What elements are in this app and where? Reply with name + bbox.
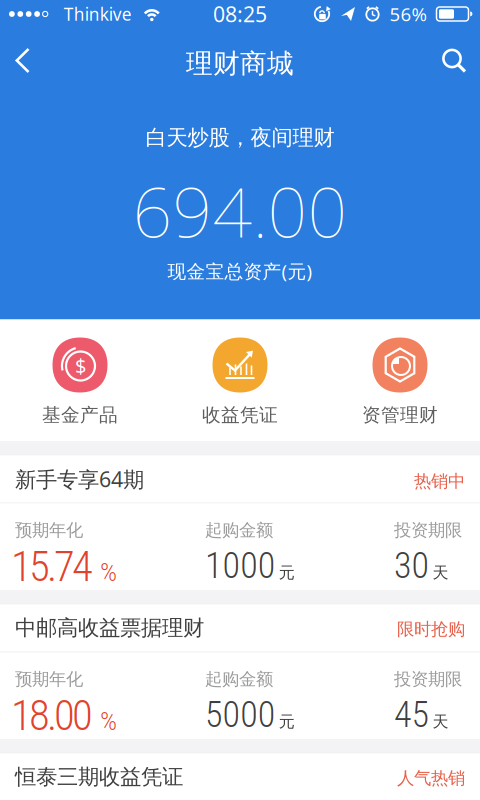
staticText: 15.74	[11, 541, 93, 591]
staticText: 1000	[205, 544, 276, 587]
staticText: 预期年化	[15, 668, 83, 690]
button[interactable]: Back	[0, 29, 31, 91]
staticText: 现金宝总资产(元)	[167, 258, 312, 283]
button[interactable]: Search	[441, 29, 480, 91]
staticText: 56%	[389, 2, 427, 26]
staticText: 5000	[205, 693, 276, 736]
staticText: 45	[394, 693, 430, 736]
staticText: 08:25	[213, 0, 267, 28]
button[interactable]: $	[0, 337, 160, 426]
staticText: 起购金额	[205, 519, 273, 541]
button[interactable]: 恒泰三期收益凭证	[0, 753, 480, 800]
staticText: 理财商城	[186, 47, 294, 80]
staticText: 基金产品	[42, 403, 118, 426]
button[interactable]: 收益凭证	[160, 337, 320, 426]
staticText: 天	[433, 563, 449, 582]
button[interactable]: 新手专享64期	[0, 455, 480, 590]
staticText: 中邮高收益票据理财	[15, 615, 204, 641]
staticText: 30	[394, 544, 430, 587]
button[interactable]: 中邮高收益票据理财	[0, 604, 480, 739]
staticText: 收益凭证	[202, 403, 278, 426]
staticText: 元	[279, 563, 295, 582]
staticText: 694.00	[132, 163, 347, 258]
button[interactable]: 资管理财	[320, 337, 480, 426]
staticText: 预期年化	[15, 519, 83, 541]
staticText: 热销中	[414, 471, 465, 492]
staticText: 资管理财	[362, 403, 438, 426]
staticText: 18.00	[11, 690, 93, 740]
staticText: %	[100, 705, 117, 737]
staticText: 起购金额	[205, 668, 273, 690]
staticText: 投资期限	[394, 519, 462, 541]
staticText: 恒泰三期收益凭证	[15, 764, 183, 790]
staticText: 天	[433, 712, 449, 731]
staticText: $	[75, 352, 86, 379]
staticText: 白天炒股，夜间理财	[145, 124, 334, 151]
staticText: 人气热销	[397, 768, 465, 789]
staticText: 新手专享64期	[15, 465, 144, 493]
staticText: 限时抢购	[397, 619, 465, 640]
staticText: 元	[279, 712, 295, 731]
staticText: %	[100, 556, 117, 588]
staticText: 投资期限	[394, 668, 462, 690]
staticText: Thinkive	[64, 2, 132, 25]
